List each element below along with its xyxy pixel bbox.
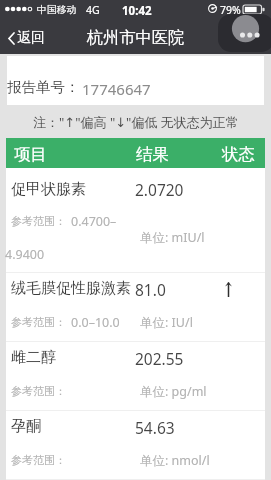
button[interactable]: 孕酮 — [6, 411, 265, 480]
staticText: 孕酮 — [11, 417, 41, 436]
staticText: 参考范围： — [11, 384, 66, 398]
button[interactable]: AssistiveTouch — [218, 14, 271, 52]
staticText: 17746647 — [82, 79, 151, 99]
button[interactable]: 促甲状腺素 — [6, 168, 265, 273]
staticText: 202.55 — [135, 348, 184, 369]
staticText: 杭州市中医院 — [87, 27, 185, 47]
button[interactable]: 返回 — [0, 22, 271, 54]
staticText: 中国移动 — [37, 4, 77, 16]
staticText: 绒毛膜促性腺激素 — [11, 279, 131, 298]
staticText: 报告单号： — [7, 78, 80, 96]
staticText: 单位: nmol/l — [140, 452, 210, 469]
staticText: 参考范围： — [11, 315, 66, 329]
staticText: 参考范围： — [11, 214, 66, 228]
button[interactable]: 雌二醇 — [6, 342, 265, 411]
staticText: 4G — [86, 3, 100, 17]
staticText: 10:42 — [122, 3, 152, 19]
staticText: 单位: pg/ml — [140, 383, 207, 400]
staticText: 81.0 — [135, 279, 166, 300]
staticText: 项目 — [14, 144, 47, 165]
button[interactable]: 绒毛膜促性腺激素 — [6, 273, 265, 342]
staticText: 状态 — [222, 144, 255, 165]
staticText: 0.0–10.0 — [71, 314, 120, 331]
staticText: 单位: mIU/l — [140, 229, 205, 246]
staticText: 雌二醇 — [11, 348, 56, 367]
staticText: 促甲状腺素 — [11, 180, 86, 199]
staticText: 单位: IU/l — [140, 314, 193, 331]
staticText: 返回 — [17, 29, 45, 47]
staticText: 注："↑"偏高 "↓"偏低 无状态为正常 — [33, 113, 239, 131]
staticText: 4.9400 — [5, 246, 45, 263]
staticText: 0.4700– — [71, 213, 117, 230]
staticText: 结果 — [136, 144, 169, 165]
staticText: 2.0720 — [135, 179, 184, 200]
staticText: 79% — [220, 3, 241, 17]
staticText: 参考范围： — [11, 453, 66, 467]
staticText: 54.63 — [135, 417, 175, 438]
